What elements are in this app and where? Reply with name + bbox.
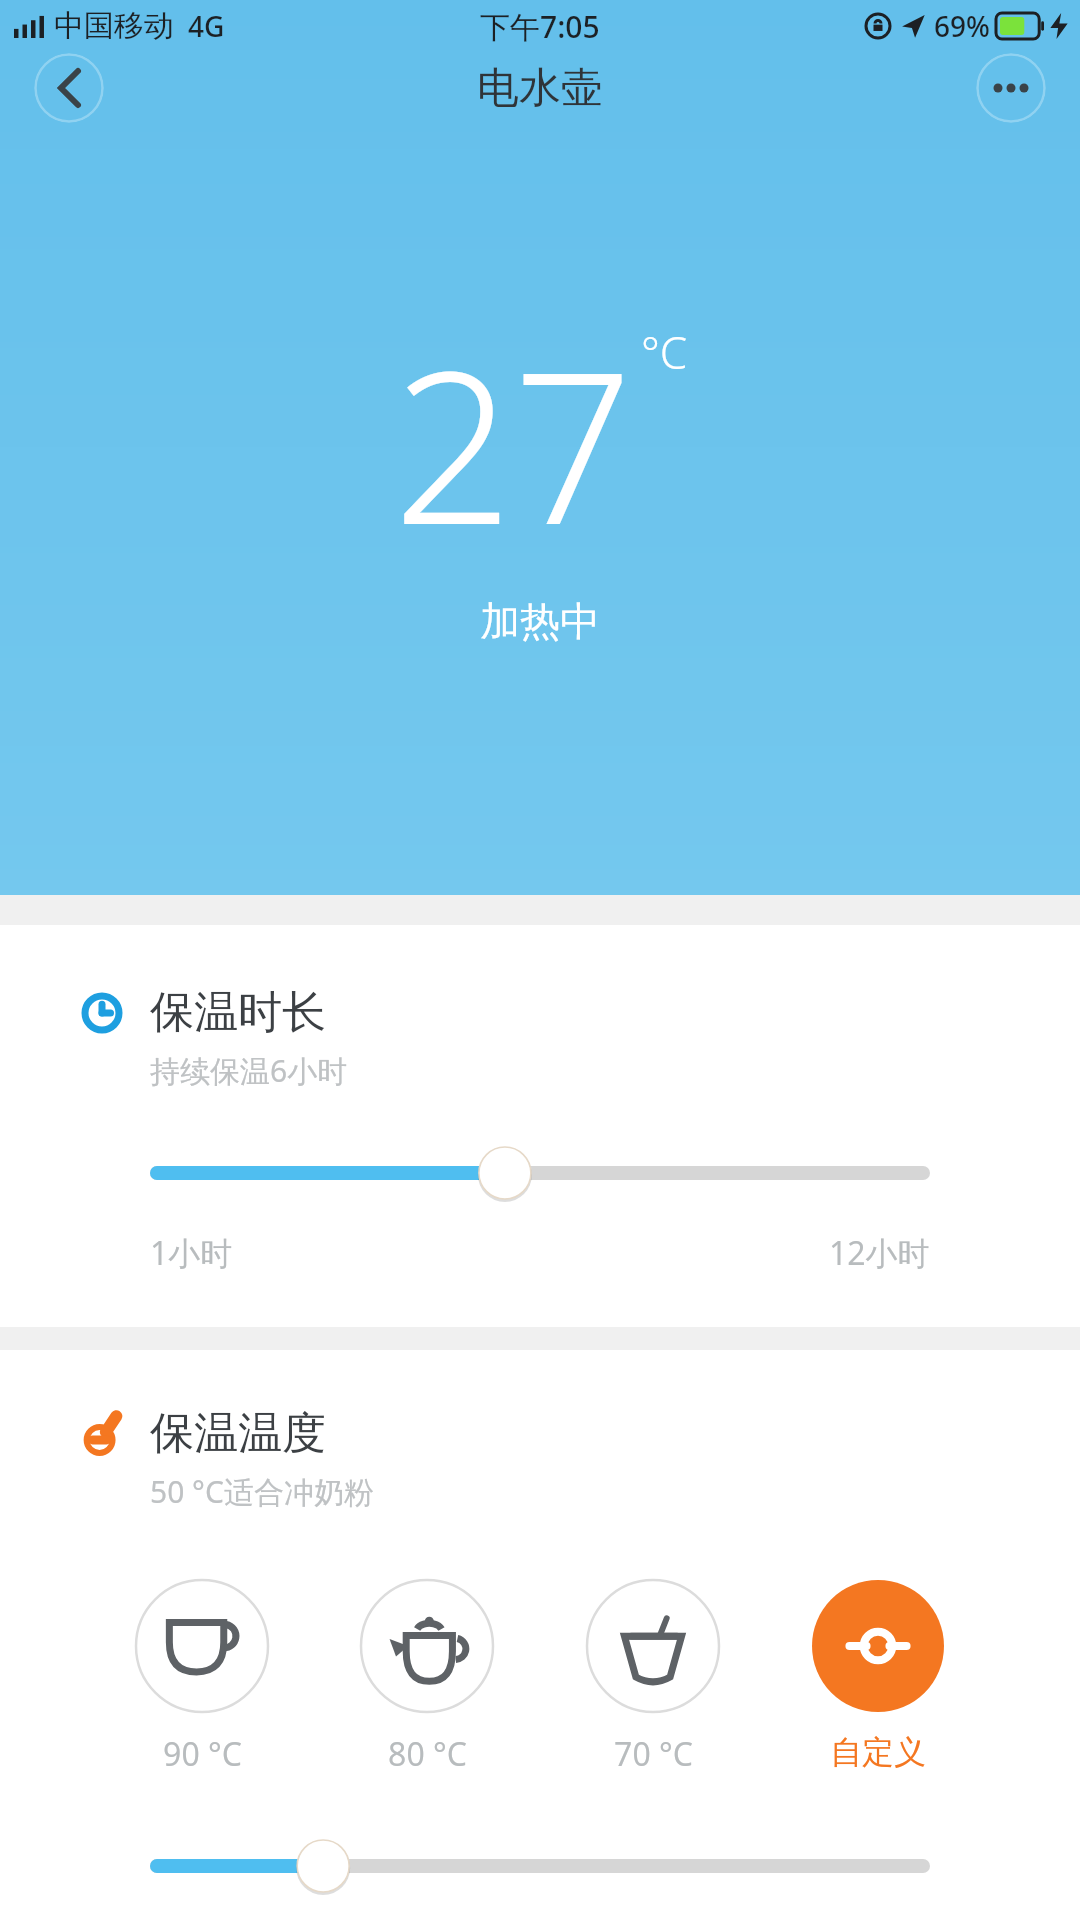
staticText: 69%: [934, 7, 990, 45]
button[interactable]: More options: [976, 53, 1046, 123]
staticText: 自定义: [830, 1732, 926, 1772]
staticText: 4G: [188, 7, 225, 45]
staticText: 50 °C适合冲奶粉: [150, 1471, 374, 1512]
button[interactable]: 80 °C: [355, 1574, 499, 1780]
staticText: 保温时长: [150, 985, 326, 1040]
staticText: 加热中: [480, 596, 600, 646]
staticText: 持续保温6小时: [150, 1050, 348, 1091]
button[interactable]: 70 °C: [581, 1574, 725, 1780]
staticText: 80 °C: [388, 1732, 467, 1776]
staticText: 下午7:05: [480, 6, 600, 47]
button[interactable]: 保温时长: [0, 925, 1080, 1327]
staticText: °C: [641, 322, 688, 382]
staticText: 27: [393, 300, 633, 586]
button[interactable]: 自定义: [806, 1574, 950, 1776]
staticText: 12小时: [829, 1231, 930, 1275]
button[interactable]: [0, 1836, 1080, 1896]
staticText: 90 °C: [163, 1732, 242, 1776]
button[interactable]: Back: [34, 53, 104, 123]
staticText: 1小时: [150, 1231, 233, 1275]
staticText: 70 °C: [614, 1732, 693, 1776]
button[interactable]: 保温温度: [0, 1350, 1080, 1920]
staticText: 保温温度: [150, 1406, 326, 1461]
staticText: 中国移动: [54, 7, 174, 45]
button[interactable]: 90 °C: [130, 1574, 274, 1780]
staticText: 电水壶: [477, 62, 603, 115]
button[interactable]: [0, 1143, 1080, 1203]
